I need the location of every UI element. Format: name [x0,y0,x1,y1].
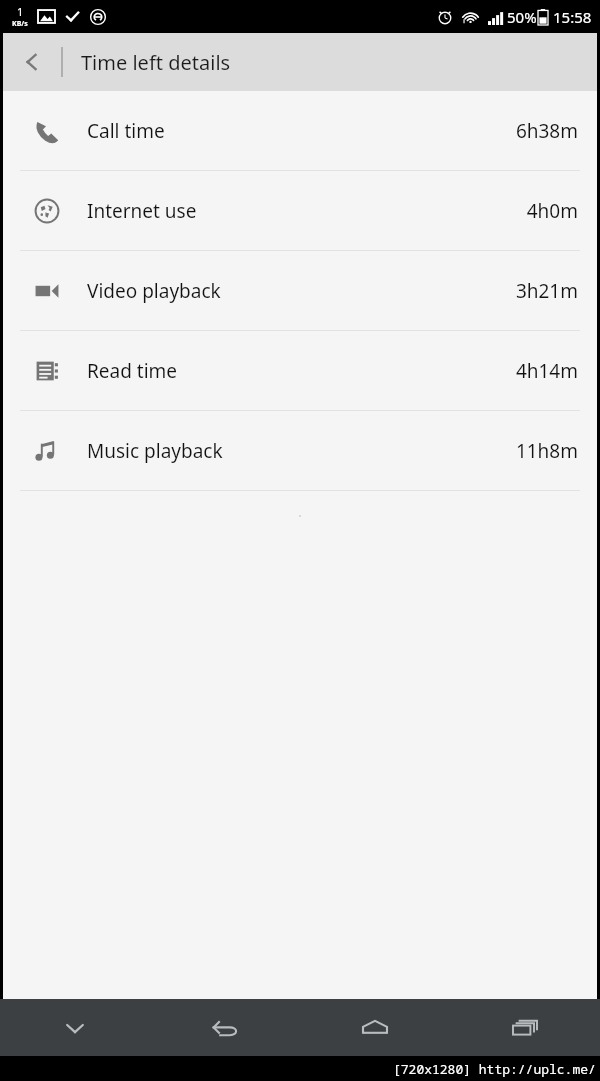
staticText: Time left details [81,49,231,76]
button[interactable]: Music playback [3,411,597,490]
button[interactable]: Back [150,999,300,1056]
staticText: 15:58 [553,7,592,27]
staticText: Call time [87,118,165,144]
button[interactable]: Internet use [3,171,597,250]
button[interactable]: Call time [3,91,597,170]
staticText: 6h38m [515,118,578,144]
staticText: 4h14m [515,358,578,384]
button[interactable]: Recents [450,999,600,1056]
staticText: 50% [507,7,537,27]
staticText: Read time [87,358,178,384]
button[interactable]: Hide keyboard [0,999,150,1056]
staticText: Video playback [87,278,221,304]
staticText: 4h0m [526,198,578,224]
staticText: KB/s [12,19,28,29]
staticText: Internet use [87,198,197,224]
button[interactable]: Home [300,999,450,1056]
staticText: 3h21m [515,278,578,304]
staticText: [720x1280] http://uplc.me/ [393,1060,596,1078]
button[interactable]: Back [3,33,61,91]
staticText: Music playback [87,438,223,464]
staticText: 11h8m [515,438,578,464]
button[interactable]: Video playback [3,251,597,330]
staticText: 1 [17,4,24,19]
button[interactable]: Read time [3,331,597,410]
